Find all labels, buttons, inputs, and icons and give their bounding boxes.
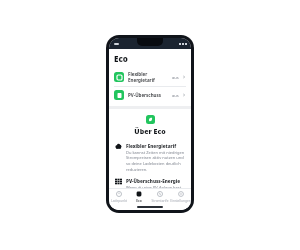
staticText: aus bbox=[172, 75, 179, 80]
button[interactable]: Einstellungen bbox=[170, 189, 191, 204]
staticText: aus bbox=[172, 93, 179, 98]
staticText: Flexibler Energietarif bbox=[126, 143, 177, 149]
button[interactable]: Eco bbox=[129, 189, 149, 204]
button[interactable]: Ladepunkt bbox=[109, 189, 129, 204]
other: Open bbox=[182, 93, 186, 97]
staticText: Eco bbox=[136, 199, 142, 203]
staticText: Ladepunkt bbox=[111, 199, 127, 203]
staticText: Stromtarife bbox=[151, 199, 169, 203]
staticText: PV-Überschuss-Energie bbox=[126, 178, 181, 184]
staticText: Eco bbox=[114, 53, 128, 64]
staticText: Wenn du eine PV-Anlage hast und einen sm… bbox=[126, 185, 185, 188]
button[interactable]: Stromtarife bbox=[149, 189, 170, 204]
staticText: Einstellungen bbox=[170, 199, 191, 203]
staticText: Über Eco bbox=[134, 127, 166, 137]
staticText: PV-Überschuss bbox=[128, 92, 172, 98]
other: Open bbox=[182, 75, 186, 79]
button[interactable]: PV-Überschuss bbox=[114, 87, 186, 103]
staticText: Flexibler Energietarif bbox=[128, 71, 172, 83]
button[interactable]: Flexibler Energietarif bbox=[114, 68, 186, 86]
staticText: Du kannst Zeiten mit niedrigen Stromprei… bbox=[126, 150, 185, 173]
